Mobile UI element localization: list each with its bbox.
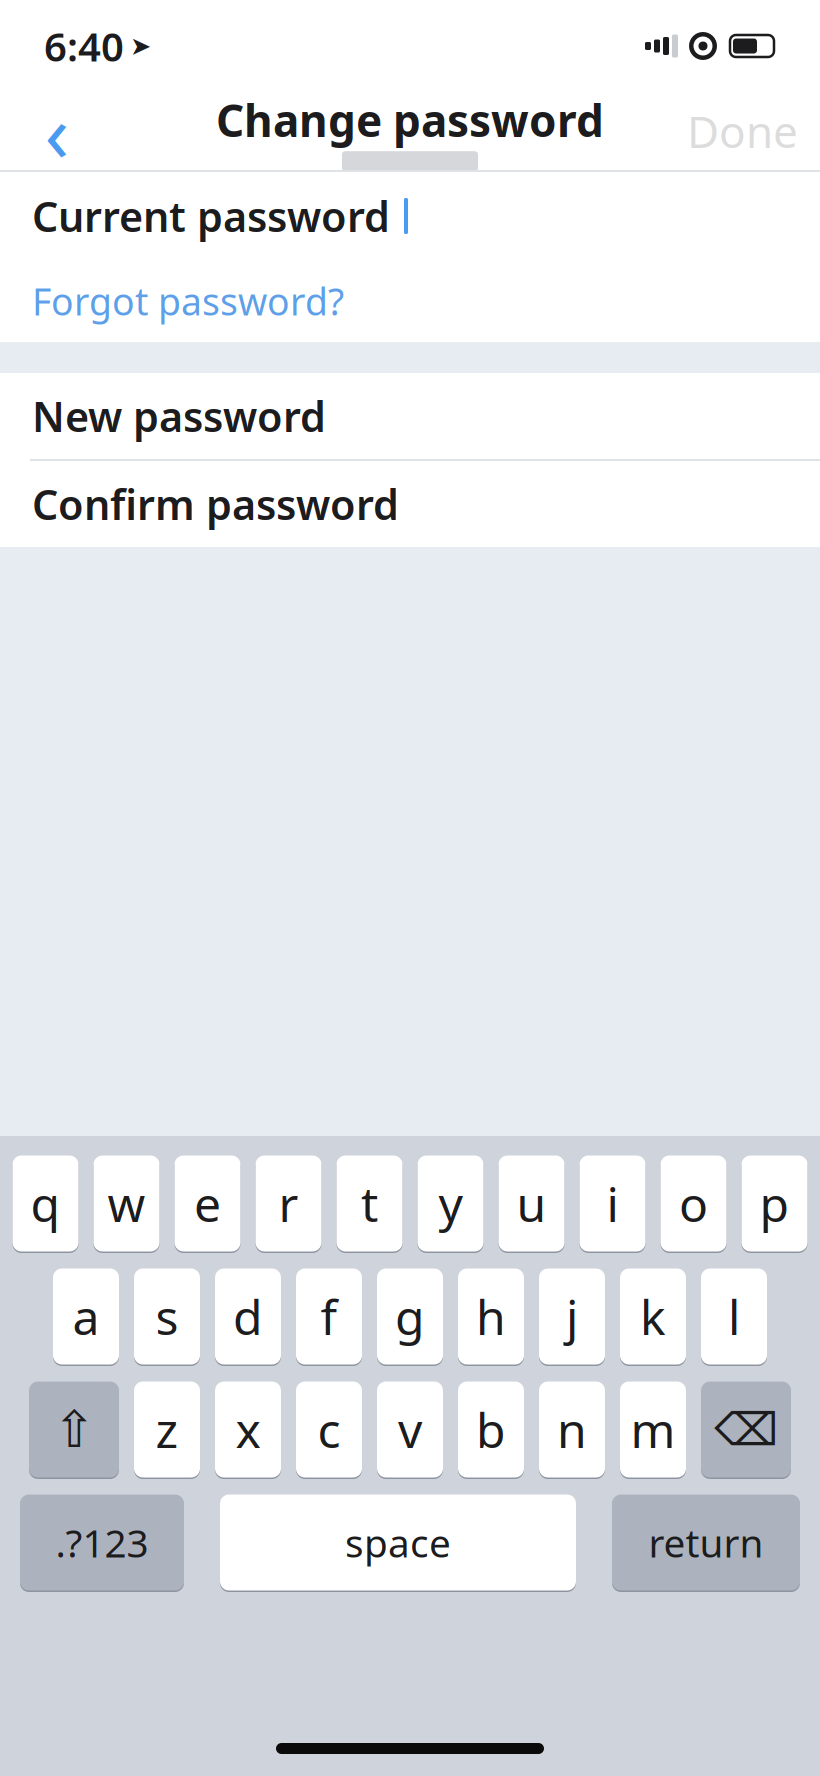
staticText: Done (687, 102, 798, 160)
staticText: New password (32, 389, 326, 443)
staticText: q (30, 1172, 60, 1235)
staticText: x (235, 1398, 260, 1461)
button[interactable]: c (296, 1380, 362, 1479)
button[interactable]: q (12, 1154, 78, 1253)
button[interactable]: Done (687, 93, 798, 169)
staticText: a (72, 1285, 99, 1348)
button[interactable]: r (255, 1154, 321, 1253)
staticText: c (317, 1398, 340, 1461)
button[interactable]: k (620, 1267, 686, 1366)
staticText: o (679, 1172, 708, 1235)
staticText: t (361, 1172, 378, 1235)
button[interactable]: u (498, 1154, 564, 1253)
button[interactable]: h (458, 1267, 524, 1366)
staticText: u (516, 1172, 546, 1235)
staticText: v (398, 1398, 422, 1461)
button[interactable]: y (417, 1154, 483, 1253)
staticText: r (278, 1172, 298, 1235)
button[interactable]: l (701, 1267, 767, 1366)
button[interactable]: t (336, 1154, 402, 1253)
button[interactable]: z (134, 1380, 200, 1479)
staticText: e (194, 1172, 221, 1235)
staticText: m (630, 1398, 675, 1461)
button[interactable]: p (741, 1154, 807, 1253)
staticText: y (438, 1172, 462, 1235)
button[interactable]: s (134, 1267, 200, 1366)
button[interactable]: ⌫ (701, 1380, 791, 1479)
button[interactable]: i (579, 1154, 645, 1253)
staticText: return (648, 1517, 763, 1568)
staticText: ➤ (130, 32, 151, 60)
button[interactable]: return (612, 1493, 800, 1592)
staticText: g (395, 1285, 425, 1348)
staticText: .?123 (55, 1517, 148, 1568)
button[interactable]: a (53, 1267, 119, 1366)
button[interactable]: space (220, 1493, 576, 1592)
staticText: l (728, 1285, 740, 1348)
button[interactable]: d (215, 1267, 281, 1366)
button[interactable]: .?123 (20, 1493, 184, 1592)
button[interactable]: w (93, 1154, 159, 1253)
staticText: z (155, 1398, 178, 1461)
staticText: b (476, 1398, 506, 1461)
button[interactable]: o (660, 1154, 726, 1253)
button[interactable]: e (174, 1154, 240, 1253)
staticText: Current password (32, 189, 390, 243)
button[interactable]: n (539, 1380, 605, 1479)
button[interactable]: Back (22, 93, 92, 169)
button[interactable]: ⇧ (29, 1380, 119, 1479)
staticText: w (107, 1172, 145, 1235)
button[interactable]: f (296, 1267, 362, 1366)
staticText: space (345, 1517, 451, 1568)
staticText: k (640, 1285, 666, 1348)
staticText: j (566, 1285, 578, 1348)
button[interactable]: j (539, 1267, 605, 1366)
button[interactable]: m (620, 1380, 686, 1479)
button[interactable]: g (377, 1267, 443, 1366)
staticText: f (320, 1285, 337, 1348)
staticText: d (233, 1285, 263, 1348)
staticText: ‹ (44, 78, 69, 184)
button[interactable]: x (215, 1380, 281, 1479)
button[interactable]: Forgot password? (0, 260, 820, 342)
staticText: Forgot password? (32, 276, 344, 326)
button[interactable]: b (458, 1380, 524, 1479)
staticText: Confirm password (32, 477, 399, 531)
staticText: ⌫ (714, 1404, 778, 1455)
staticText: 6:40 (44, 19, 124, 72)
staticText: i (606, 1172, 618, 1235)
staticText: Change password (216, 91, 604, 149)
staticText: ⇧ (53, 1401, 95, 1458)
staticText: p (759, 1172, 789, 1235)
staticText: s (155, 1285, 178, 1348)
staticText: n (557, 1398, 587, 1461)
button[interactable]: v (377, 1380, 443, 1479)
staticText: h (476, 1285, 506, 1348)
